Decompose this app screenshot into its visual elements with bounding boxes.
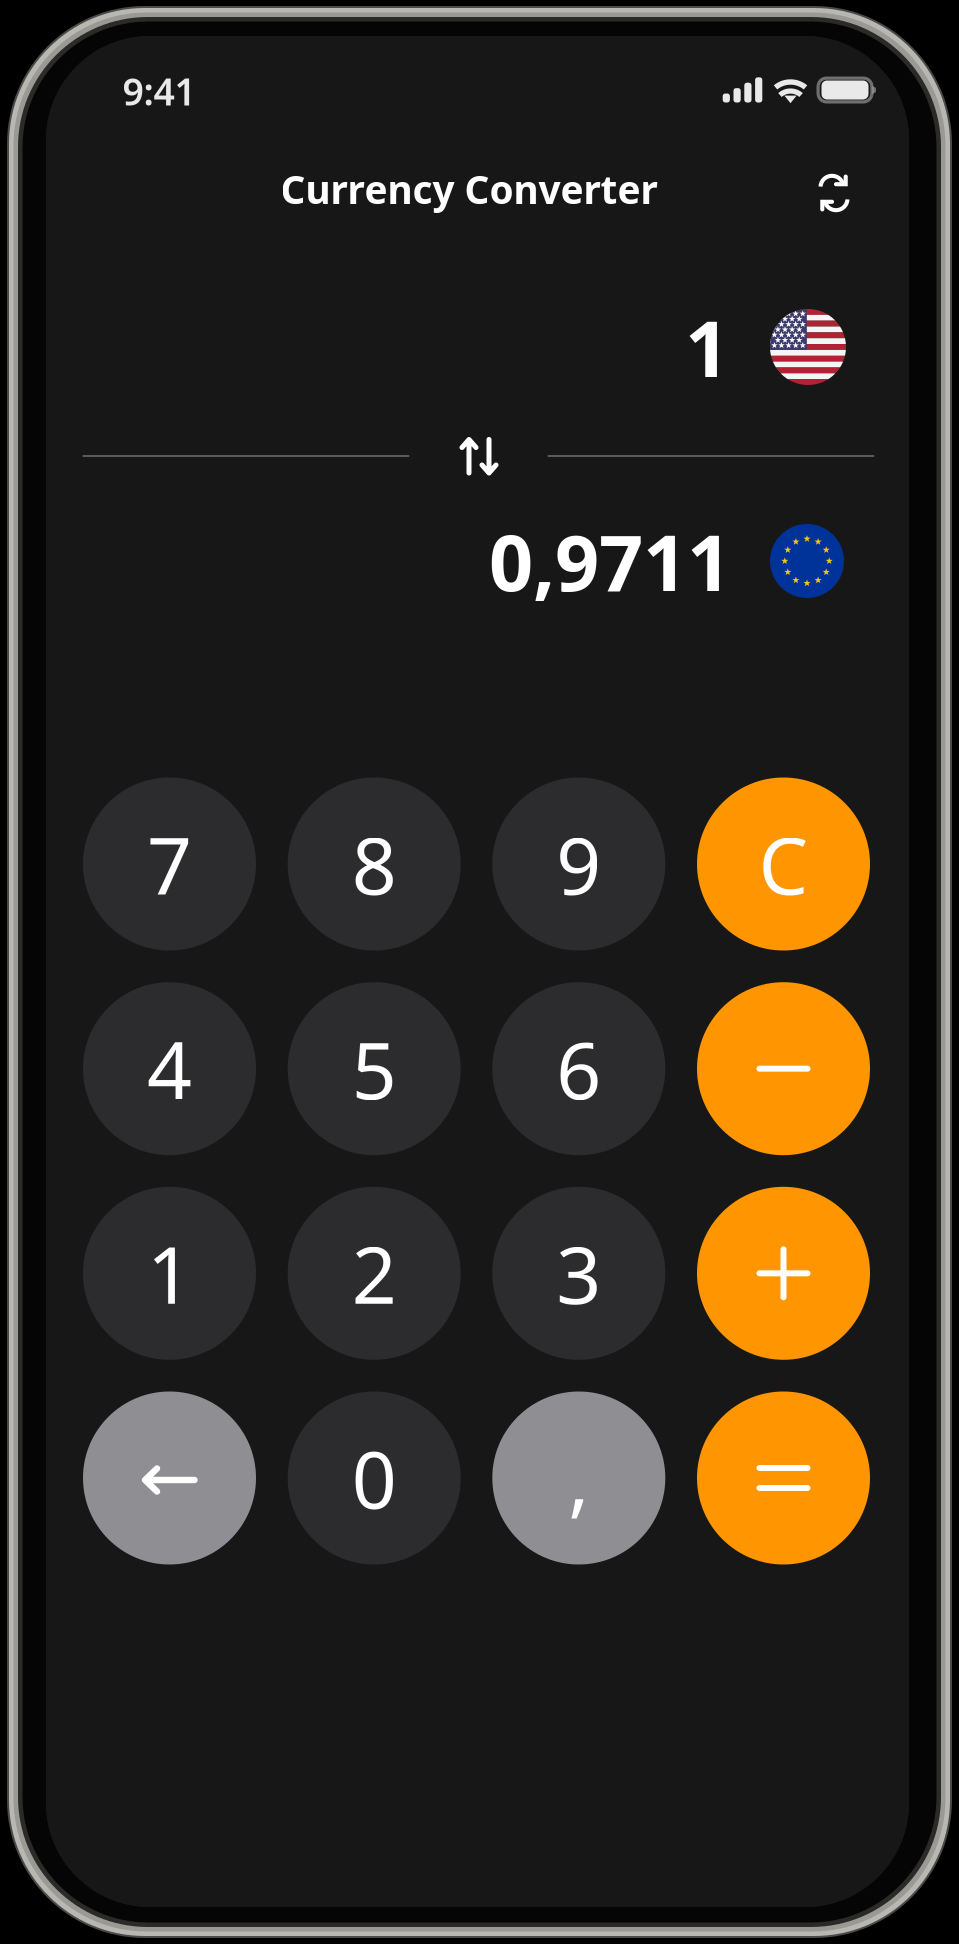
staticText: 0,9711	[489, 510, 731, 612]
staticText: ,	[568, 1426, 589, 1530]
staticText: 1	[685, 296, 729, 398]
staticText: 3	[556, 1221, 601, 1326]
button[interactable]: 6	[492, 982, 665, 1155]
staticText: 8	[352, 812, 397, 916]
button[interactable]: 0,9711 euro	[374, 501, 844, 621]
button[interactable]: C	[697, 777, 870, 950]
button[interactable]: 3	[492, 1187, 665, 1360]
button[interactable]: 5	[288, 982, 461, 1155]
button[interactable]: delete	[83, 1391, 256, 1564]
button[interactable]: Swap currencies	[441, 424, 517, 488]
button[interactable]: 4	[83, 982, 256, 1155]
button[interactable]: 8	[288, 777, 461, 950]
staticText: 6	[556, 1016, 601, 1121]
staticText: 9:41	[122, 66, 195, 116]
staticText: C	[758, 812, 808, 916]
button[interactable]: 1	[83, 1187, 256, 1360]
staticText: 9	[556, 812, 601, 916]
staticText: Currency Converter	[280, 163, 657, 215]
button[interactable]: 0	[288, 1391, 461, 1564]
button[interactable]: ,	[492, 1391, 665, 1564]
button[interactable]: 1 US dollar	[426, 287, 846, 407]
staticText: 1	[147, 1221, 192, 1326]
button[interactable]: Refresh exchange rates	[796, 155, 872, 231]
staticText: 2	[352, 1221, 397, 1326]
button[interactable]: Currency Converter	[254, 154, 684, 224]
staticText: 4	[147, 1016, 192, 1121]
button[interactable]: minus	[697, 982, 870, 1155]
staticText: 7	[147, 812, 192, 916]
button[interactable]: plus	[697, 1187, 870, 1360]
button[interactable]: equals	[697, 1391, 870, 1564]
button[interactable]: 9	[492, 777, 665, 950]
button[interactable]: 7	[83, 777, 256, 950]
button[interactable]: 2	[288, 1187, 461, 1360]
staticText: 5	[352, 1016, 397, 1121]
staticText: 0	[352, 1426, 397, 1530]
